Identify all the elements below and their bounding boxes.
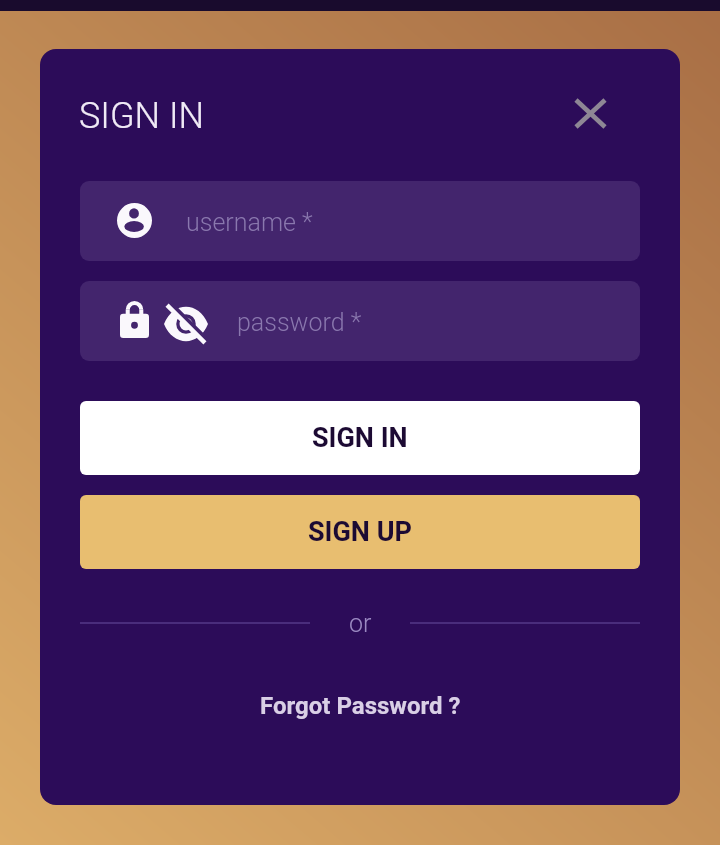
button[interactable]: SIGN UP bbox=[80, 495, 640, 569]
button[interactable]: Show password bbox=[80, 281, 640, 361]
button[interactable]: Close bbox=[568, 91, 612, 135]
staticText: SIGN IN bbox=[79, 95, 205, 137]
button[interactable]: Forgot Password ? bbox=[250, 686, 471, 726]
button[interactable]: username * bbox=[80, 181, 640, 261]
staticText: SIGN IN bbox=[312, 422, 408, 454]
button[interactable]: Show password bbox=[160, 300, 212, 348]
staticText: SIGN UP bbox=[308, 516, 412, 548]
staticText: or bbox=[349, 609, 372, 638]
staticText: password * bbox=[237, 308, 362, 337]
staticText: username * bbox=[186, 208, 313, 237]
button[interactable]: SIGN IN bbox=[80, 401, 640, 475]
